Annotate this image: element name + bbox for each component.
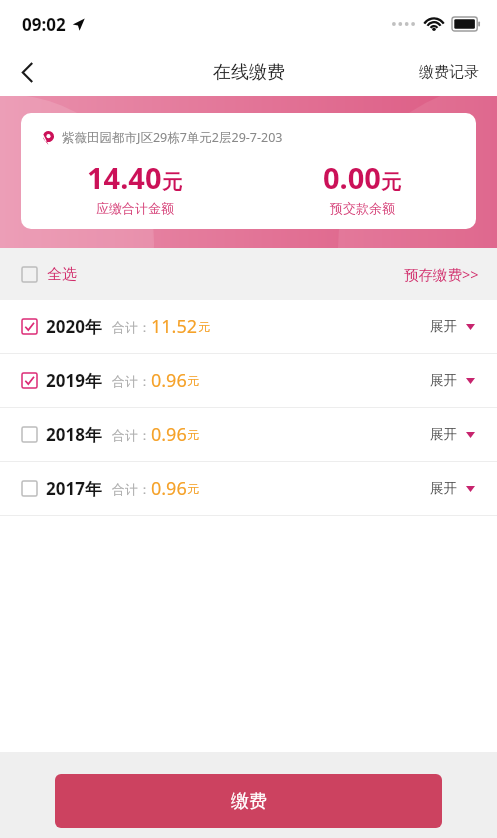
- staticText: 在线缴费: [213, 61, 285, 84]
- staticText: 2018年: [46, 423, 102, 446]
- staticText: 展开: [430, 426, 457, 443]
- button[interactable]: 2020年: [0, 300, 497, 353]
- staticText: 合计：: [112, 427, 151, 443]
- staticText: 0.96: [151, 422, 187, 447]
- staticText: 缴费: [231, 790, 267, 813]
- button[interactable]: Back: [0, 48, 54, 96]
- staticText: 2019年: [46, 369, 102, 392]
- staticText: 0.00: [323, 158, 381, 197]
- button[interactable]: 2018年: [0, 408, 497, 461]
- staticText: 合计：: [112, 373, 151, 389]
- button[interactable]: 2017年: [0, 462, 497, 515]
- staticText: 预交款余额: [330, 200, 395, 216]
- staticText: 合计：: [112, 481, 151, 497]
- staticText: 2020年: [46, 315, 102, 338]
- staticText: 0.96: [151, 476, 187, 501]
- staticText: 全选: [47, 265, 77, 284]
- button[interactable]: 全选: [0, 248, 93, 300]
- staticText: 缴费记录: [419, 63, 479, 82]
- staticText: 14.40: [87, 158, 162, 197]
- staticText: 元: [162, 170, 182, 195]
- staticText: 11.52: [151, 314, 198, 339]
- staticText: 元: [187, 481, 199, 496]
- staticText: 展开: [430, 372, 457, 389]
- staticText: 元: [381, 170, 401, 195]
- staticText: 预存缴费>>: [404, 264, 479, 284]
- staticText: 紫薇田园都市J区29栋7单元2层29-7-203: [62, 129, 283, 146]
- staticText: 09:02: [22, 13, 66, 36]
- staticText: 应缴合计金额: [96, 200, 174, 216]
- staticText: 元: [187, 373, 199, 388]
- staticText: 展开: [430, 318, 457, 335]
- button[interactable]: 缴费记录: [401, 48, 497, 96]
- button[interactable]: 紫薇田园都市J区29栋7单元2层29-7-203: [21, 113, 476, 229]
- button[interactable]: 预存缴费>>: [386, 248, 497, 300]
- staticText: 元: [187, 427, 199, 442]
- staticText: 合计：: [112, 319, 151, 335]
- staticText: 2017年: [46, 477, 102, 500]
- button[interactable]: 缴费: [55, 774, 442, 828]
- staticText: 0.96: [151, 368, 187, 393]
- button[interactable]: 2019年: [0, 354, 497, 407]
- staticText: 元: [198, 319, 210, 334]
- staticText: 展开: [430, 480, 457, 497]
